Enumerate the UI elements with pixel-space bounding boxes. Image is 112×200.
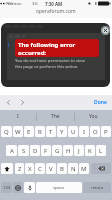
button[interactable]: U xyxy=(68,126,78,137)
staticText: W xyxy=(15,128,21,136)
button[interactable]: G xyxy=(52,145,62,156)
button[interactable]: The xyxy=(37,110,74,123)
staticText: E xyxy=(27,128,31,136)
staticText: M xyxy=(81,165,87,173)
staticText: X xyxy=(28,165,32,173)
staticText: U xyxy=(71,128,76,136)
button[interactable]: Done xyxy=(93,95,107,110)
button[interactable]: Z xyxy=(15,163,24,174)
staticText: The following error occurred: xyxy=(18,41,76,56)
staticText: space xyxy=(53,185,65,191)
staticText: 3G xyxy=(32,1,38,7)
staticText: Y xyxy=(60,128,64,136)
staticText: S xyxy=(22,147,26,155)
button[interactable]: S xyxy=(18,145,29,156)
staticText: F xyxy=(44,147,48,155)
staticText: K xyxy=(88,147,92,155)
button[interactable]: W xyxy=(13,126,23,137)
button[interactable]: O xyxy=(90,126,100,137)
button[interactable]: E xyxy=(24,126,34,137)
staticText: 123 xyxy=(3,185,11,191)
button[interactable]: H xyxy=(63,145,73,156)
button[interactable]: P xyxy=(101,126,111,137)
button[interactable]: F xyxy=(41,145,51,156)
button[interactable]: Close xyxy=(101,26,110,35)
button[interactable]: B xyxy=(57,163,67,174)
staticText: D xyxy=(33,147,38,155)
staticText: L xyxy=(99,147,103,155)
staticText: You do not have permission to view this … xyxy=(15,58,85,69)
button[interactable]: You xyxy=(75,110,112,123)
button[interactable]: N xyxy=(68,163,78,174)
staticText: N xyxy=(71,165,76,173)
staticText: O xyxy=(93,128,98,136)
staticText: The xyxy=(51,113,60,120)
button[interactable]: Q xyxy=(1,126,12,137)
staticText: 7:30 AM xyxy=(45,1,63,7)
staticText: G xyxy=(55,147,60,155)
staticText: J xyxy=(78,147,80,155)
button[interactable]: Shift xyxy=(1,163,13,174)
button[interactable]: Emoji xyxy=(13,182,23,193)
button[interactable]: J xyxy=(74,145,84,156)
staticText: V xyxy=(49,165,53,173)
staticText: Done xyxy=(94,99,107,106)
staticText: operaforum.com xyxy=(36,8,76,15)
staticText: Z xyxy=(18,165,22,173)
staticText: Q xyxy=(4,128,9,136)
button[interactable]: Numbers xyxy=(1,182,12,193)
staticText: T xyxy=(49,128,53,136)
button[interactable]: return xyxy=(83,182,111,193)
staticText: A xyxy=(10,147,14,155)
staticText: You xyxy=(89,113,98,120)
staticText: Verizon xyxy=(7,1,22,7)
button[interactable]: V xyxy=(46,163,56,174)
button[interactable]: A xyxy=(6,145,17,156)
button[interactable]: Y xyxy=(57,126,67,137)
button[interactable]: X xyxy=(25,163,34,174)
button[interactable]: I xyxy=(79,126,89,137)
staticText: B xyxy=(60,165,64,173)
staticText: H xyxy=(66,147,71,155)
button[interactable]: L xyxy=(96,145,106,156)
staticText: R xyxy=(38,128,42,136)
staticText: I xyxy=(17,113,19,120)
button[interactable]: Next field xyxy=(16,95,29,110)
button[interactable]: M xyxy=(79,163,89,174)
button[interactable]: D xyxy=(30,145,40,156)
staticText: return xyxy=(91,185,104,191)
button[interactable]: K xyxy=(85,145,95,156)
button[interactable]: C xyxy=(35,163,45,174)
button[interactable]: space xyxy=(36,182,82,193)
button[interactable]: Dictation xyxy=(24,182,35,193)
button[interactable]: Backspace xyxy=(91,163,111,174)
button[interactable]: T xyxy=(46,126,56,137)
button[interactable]: Previous field xyxy=(2,95,15,110)
button[interactable]: I xyxy=(0,110,36,123)
staticText: P xyxy=(104,128,108,136)
staticText: C xyxy=(38,165,42,173)
button[interactable]: R xyxy=(35,126,45,137)
staticText: I xyxy=(83,128,86,136)
